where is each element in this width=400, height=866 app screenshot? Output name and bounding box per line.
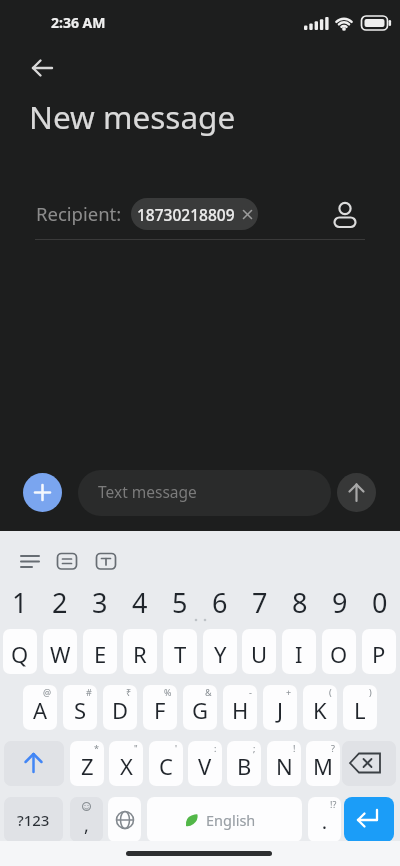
staticText: Text message	[98, 481, 197, 502]
button[interactable]	[52, 548, 82, 576]
button[interactable]: B	[227, 741, 261, 786]
staticText: U	[251, 639, 268, 669]
button[interactable]: A	[23, 685, 57, 730]
button[interactable]: M	[306, 741, 340, 786]
button[interactable]	[344, 797, 394, 842]
staticText: 1	[12, 584, 28, 621]
staticText: Z	[81, 751, 94, 781]
button[interactable]: P	[362, 629, 396, 674]
button[interactable]: H	[223, 685, 257, 730]
staticText: (	[329, 686, 332, 698]
button[interactable]: T	[163, 629, 197, 674]
button[interactable]: 0	[360, 583, 400, 621]
staticText: E	[94, 639, 107, 669]
button[interactable]: Text message	[78, 470, 331, 516]
button[interactable]: O	[322, 629, 356, 674]
button[interactable]: 18730218809	[131, 198, 258, 230]
staticText: C	[159, 751, 173, 781]
staticText: 2:36 AM	[51, 13, 106, 32]
staticText: 3	[92, 584, 108, 621]
staticText: X	[120, 751, 133, 781]
staticText: 5	[172, 584, 188, 621]
button[interactable]: ?123	[4, 797, 63, 842]
button[interactable]: G	[183, 685, 217, 730]
button[interactable]	[4, 741, 64, 786]
staticText: :	[214, 742, 217, 754]
staticText: 4	[132, 584, 148, 621]
staticText: ;	[253, 742, 256, 754]
staticText: D	[112, 695, 129, 725]
staticText: P	[372, 639, 386, 669]
staticText: *	[94, 742, 99, 754]
staticText: 0	[372, 584, 388, 621]
staticText: Recipient:	[36, 201, 122, 226]
button[interactable]: Y	[203, 629, 237, 674]
button[interactable]: ,	[70, 797, 103, 842]
staticText: #	[86, 686, 92, 698]
button[interactable]	[342, 741, 396, 786]
button[interactable]	[337, 473, 376, 512]
button[interactable]: K	[303, 685, 337, 730]
staticText: %	[164, 686, 172, 698]
button[interactable]: 3	[80, 583, 120, 621]
staticText: English	[206, 810, 256, 830]
button[interactable]: 4	[120, 583, 160, 621]
staticText: ?	[331, 742, 335, 754]
staticText: 8	[292, 584, 308, 621]
staticText: S	[74, 695, 87, 725]
staticText: B	[237, 751, 252, 781]
button[interactable]	[25, 52, 59, 84]
staticText: G	[192, 695, 209, 725]
staticText: K	[313, 695, 327, 725]
button[interactable]: 6	[200, 583, 240, 621]
button[interactable]: X	[109, 741, 143, 786]
button[interactable]: F	[143, 685, 177, 730]
button[interactable]: I	[282, 629, 316, 674]
button[interactable]: 9	[320, 583, 360, 621]
staticText: T	[174, 639, 187, 669]
button[interactable]	[23, 473, 62, 512]
button[interactable]: 2	[40, 583, 80, 621]
button[interactable]: 8	[280, 583, 320, 621]
staticText: !?	[330, 798, 337, 810]
button[interactable]: D	[103, 685, 137, 730]
button[interactable]: R	[123, 629, 157, 674]
staticText: 6	[212, 584, 228, 621]
staticText: Q	[11, 639, 29, 669]
button[interactable]: J	[263, 685, 297, 730]
button[interactable]	[330, 194, 360, 232]
button[interactable]: Q	[3, 629, 37, 674]
staticText: 9	[332, 584, 348, 621]
button[interactable]	[91, 548, 121, 576]
staticText: 7	[252, 584, 268, 621]
button[interactable]: English	[147, 797, 302, 842]
button[interactable]: N	[267, 741, 301, 786]
staticText: +	[286, 686, 292, 698]
staticText: A	[33, 695, 48, 725]
staticText: O	[330, 639, 348, 669]
button[interactable]: 1	[0, 583, 40, 621]
staticText: '	[175, 742, 178, 754]
staticText: &	[205, 686, 212, 698]
button[interactable]: .	[308, 797, 341, 842]
button[interactable]: U	[242, 629, 276, 674]
button[interactable]	[108, 797, 141, 842]
staticText: 18730218809	[137, 204, 235, 225]
button[interactable]: C	[149, 741, 183, 786]
button[interactable]: L	[343, 685, 377, 730]
staticText: W	[50, 639, 71, 669]
staticText: .	[322, 810, 327, 835]
button[interactable]: Z	[70, 741, 104, 786]
staticText: L	[354, 695, 366, 725]
button[interactable]: W	[43, 629, 77, 674]
button[interactable]: 7	[240, 583, 280, 621]
button[interactable]: V	[188, 741, 222, 786]
staticText: @	[43, 686, 52, 698]
button[interactable]: E	[83, 629, 117, 674]
button[interactable]: S	[63, 685, 97, 730]
staticText: H	[232, 695, 249, 725]
button[interactable]: 5	[160, 583, 200, 621]
staticText: "	[134, 742, 138, 754]
button[interactable]	[15, 548, 45, 576]
staticText: !	[293, 742, 296, 754]
